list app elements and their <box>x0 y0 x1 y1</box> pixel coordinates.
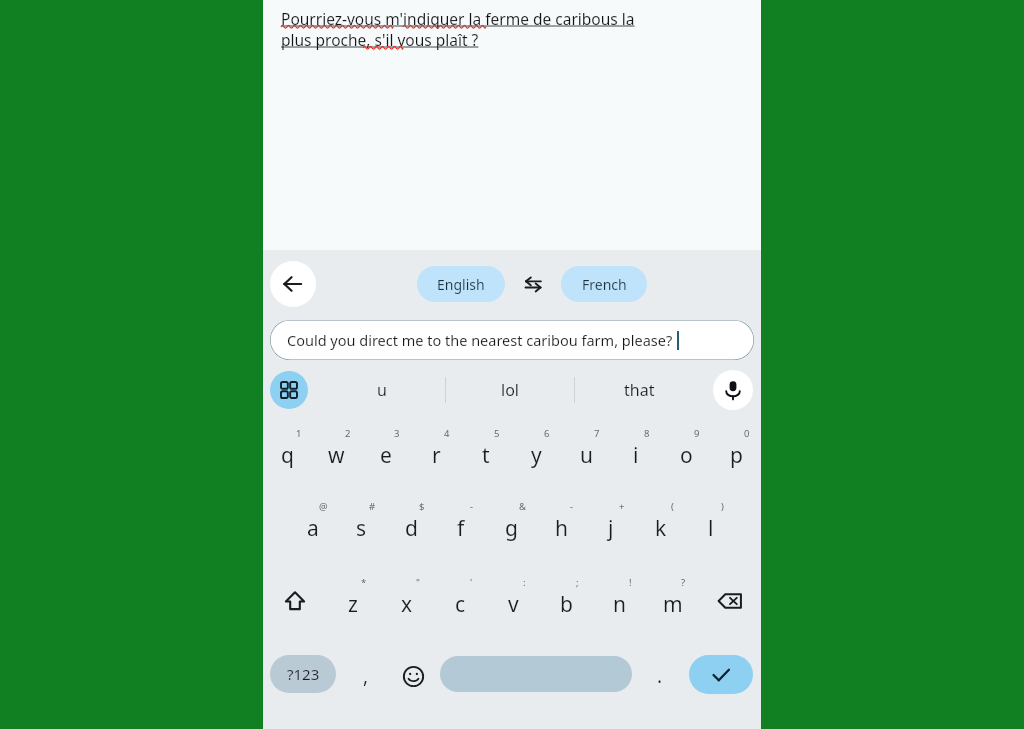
staticText: q <box>281 441 294 470</box>
staticText: * <box>361 576 367 589</box>
staticText: French <box>582 275 627 294</box>
button[interactable]: y <box>511 424 561 480</box>
staticText: # <box>369 500 376 513</box>
button[interactable]: Enter <box>689 655 753 694</box>
staticText: s <box>356 514 367 543</box>
button[interactable]: p <box>711 424 761 480</box>
button[interactable]: s <box>337 497 386 553</box>
staticText: p <box>730 441 743 470</box>
staticText: $ <box>419 500 425 513</box>
button[interactable]: m <box>646 573 699 629</box>
button[interactable]: q <box>263 424 312 480</box>
staticText: ' <box>470 576 473 589</box>
staticText: : <box>523 576 526 589</box>
button[interactable]: Emoji <box>392 648 434 704</box>
staticText: " <box>416 576 420 589</box>
button[interactable]: . <box>639 648 681 704</box>
staticText: z <box>348 590 358 619</box>
button[interactable]: k <box>636 497 686 553</box>
button[interactable]: o <box>661 424 711 480</box>
staticText: @ <box>319 500 328 513</box>
button[interactable]: w <box>312 424 361 480</box>
button[interactable]: e <box>361 424 411 480</box>
staticText: 1 <box>296 427 302 440</box>
staticText: v <box>508 590 519 619</box>
staticText: b <box>560 590 573 619</box>
staticText: m <box>663 590 683 619</box>
staticText: lol <box>501 379 519 401</box>
button[interactable]: Space <box>440 656 632 692</box>
button[interactable]: English <box>417 266 505 302</box>
button[interactable]: z <box>326 573 380 629</box>
staticText: n <box>613 590 626 619</box>
button[interactable]: that <box>575 366 703 414</box>
button[interactable]: Shift <box>263 573 326 629</box>
button[interactable]: Voice input <box>713 370 753 410</box>
button[interactable]: u <box>318 366 445 414</box>
button[interactable]: lol <box>446 366 574 414</box>
staticText: h <box>555 514 568 543</box>
button[interactable]: u <box>561 424 611 480</box>
staticText: 4 <box>444 427 450 440</box>
staticText: plus proche, s'il vous plaît ? <box>281 29 479 50</box>
button[interactable]: Swap languages <box>518 269 548 299</box>
button[interactable]: j <box>586 497 636 553</box>
staticText: , <box>363 663 369 689</box>
button[interactable]: a <box>288 497 337 553</box>
staticText: e <box>380 441 392 470</box>
staticText: English <box>437 275 485 294</box>
staticText: 5 <box>494 427 500 440</box>
staticText: 0 <box>744 427 750 440</box>
button[interactable]: French <box>561 266 647 302</box>
button[interactable]: h <box>536 497 586 553</box>
staticText: ( <box>671 500 674 513</box>
staticText: - <box>570 500 574 513</box>
staticText: k <box>655 514 667 543</box>
button[interactable]: t <box>461 424 511 480</box>
staticText: x <box>401 590 413 619</box>
staticText: - <box>470 500 474 513</box>
staticText: f <box>457 514 465 543</box>
button[interactable]: d <box>386 497 436 553</box>
button[interactable]: Backspace <box>699 573 761 629</box>
staticText: 3 <box>394 427 400 440</box>
button[interactable]: Toolbar <box>270 371 308 409</box>
button[interactable]: v <box>487 573 540 629</box>
staticText: r <box>432 441 441 470</box>
staticText: a <box>307 514 319 543</box>
staticText: ! <box>629 576 632 589</box>
staticText: d <box>405 514 418 543</box>
staticText: t <box>482 441 490 470</box>
button[interactable]: i <box>611 424 661 480</box>
button[interactable]: Back <box>270 261 316 307</box>
staticText: y <box>531 441 542 470</box>
staticText: + <box>619 500 625 513</box>
button[interactable]: r <box>411 424 461 480</box>
button[interactable]: c <box>434 573 487 629</box>
staticText: j <box>608 514 614 543</box>
button[interactable]: n <box>593 573 646 629</box>
staticText: g <box>505 514 518 543</box>
staticText: u <box>377 379 387 401</box>
button[interactable]: , <box>345 648 387 704</box>
staticText: that <box>624 379 655 401</box>
staticText: ?123 <box>287 664 320 684</box>
button[interactable]: b <box>540 573 593 629</box>
staticText: i <box>633 441 639 470</box>
staticText: . <box>657 663 663 689</box>
staticText: 2 <box>345 427 351 440</box>
button[interactable]: l <box>686 497 736 553</box>
staticText: 7 <box>594 427 600 440</box>
staticText: 8 <box>644 427 650 440</box>
staticText: u <box>580 441 593 470</box>
staticText: 9 <box>694 427 700 440</box>
button[interactable]: f <box>436 497 486 553</box>
staticText: ) <box>721 500 724 513</box>
button[interactable]: g <box>486 497 536 553</box>
button[interactable]: Could you direct me to the nearest carib… <box>270 320 754 360</box>
staticText: Pourriez-vous m'indiquer la ferme de car… <box>281 8 635 29</box>
button[interactable]: x <box>380 573 434 629</box>
button[interactable]: ?123 <box>270 655 336 693</box>
staticText: ; <box>576 576 579 589</box>
staticText: w <box>328 441 345 470</box>
